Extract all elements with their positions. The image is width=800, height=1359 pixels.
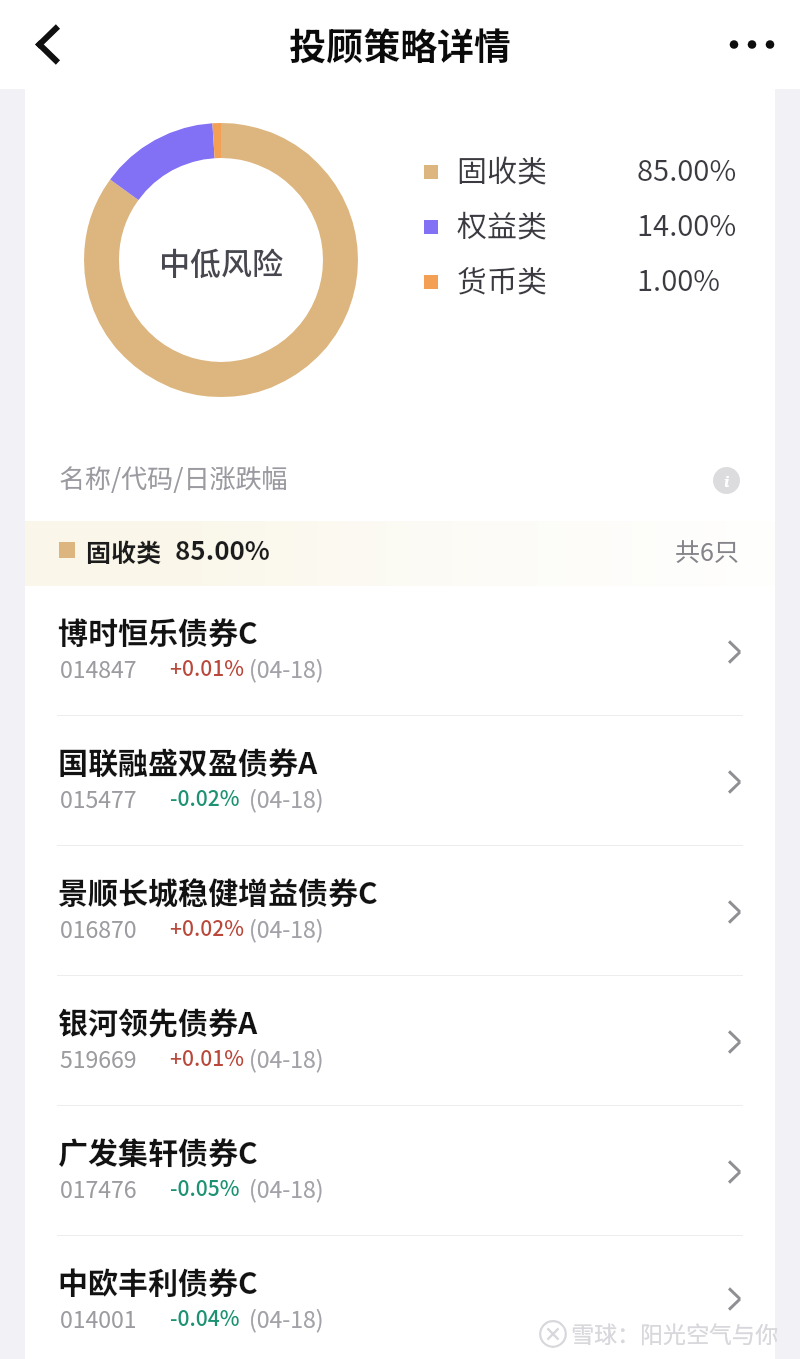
staticText: 共6只 [675,532,739,568]
staticText: (04-18) [249,1041,324,1074]
staticText: 景顺长城稳健增益债券C [58,869,378,912]
staticText: +0.01% [170,1042,244,1072]
button[interactable]: 博时恒乐债券C [25,586,775,716]
staticText: -0.04% [170,1302,240,1332]
staticText: +0.02% [170,912,244,942]
staticText: 中欧丰利债券C [58,1259,258,1302]
staticText: 中低风险 [159,239,283,284]
staticText: 85.00% [175,530,270,568]
button[interactable]: 广发集轩债券C [25,1106,775,1236]
staticText: 固收类 [457,147,547,190]
staticText: 固收类 [86,533,162,569]
staticText: (04-18) [249,1171,324,1204]
staticText: 519669 [60,1041,137,1074]
staticText: 博时恒乐债券C [58,609,258,652]
staticText: -0.02% [170,782,240,812]
staticText: 银河领先债券A [58,999,258,1042]
staticText: 014001 [60,1301,137,1334]
staticText: 85.00% [637,147,737,189]
staticText: 016870 [60,911,137,944]
button[interactable]: 景顺长城稳健增益债券C [25,846,775,976]
button[interactable]: More options [720,13,784,77]
staticText: (04-18) [249,781,324,814]
staticText: 名称/代码/日涨跌幅 [59,458,288,496]
button[interactable]: 银河领先债券A [25,976,775,1106]
staticText: 权益类 [457,202,547,245]
staticText: 投顾策略详情 [289,17,511,71]
staticText: 货币类 [457,257,547,300]
staticText: 014847 [60,651,137,684]
staticText: i [724,471,730,491]
staticText: (04-18) [249,911,324,944]
staticText: 雪球：阳光空气与你 [571,1316,778,1349]
button[interactable]: Back [21,19,73,71]
staticText: (04-18) [249,1301,324,1334]
staticText: 14.00% [637,202,737,244]
button[interactable]: Info [713,467,740,494]
staticText: 广发集轩债券C [58,1129,258,1172]
staticText: 国联融盛双盈债券A [58,739,318,782]
button[interactable]: 国联融盛双盈债券A [25,716,775,846]
staticText: (04-18) [249,651,324,684]
staticText: -0.05% [170,1172,240,1202]
staticText: 017476 [60,1171,137,1204]
staticText: 1.00% [637,257,721,299]
staticText: +0.01% [170,652,244,682]
staticText: 015477 [60,781,137,814]
button[interactable]: 中欧丰利债券C [25,1236,775,1359]
